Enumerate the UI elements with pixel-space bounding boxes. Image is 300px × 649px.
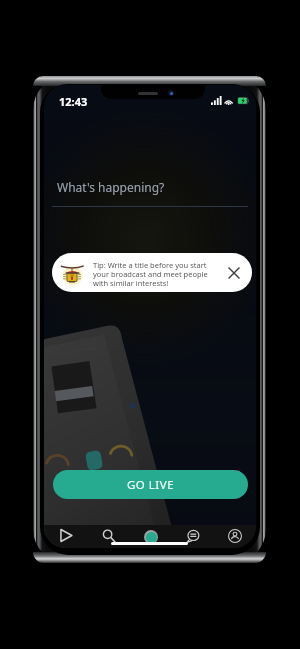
staticText: 12:43 <box>59 94 88 109</box>
button[interactable]: Go live <box>130 525 172 548</box>
staticText: GO LIVE <box>127 477 175 493</box>
staticText: Tip: Write a title before you start your… <box>93 260 209 289</box>
button[interactable]: Broadcasts <box>44 525 87 548</box>
button[interactable]: Profile <box>214 525 256 548</box>
button[interactable]: Tip: Write a title before you start your… <box>52 253 252 292</box>
staticText: What's happening? <box>57 179 165 195</box>
button[interactable]: Messages <box>172 525 214 548</box>
button[interactable]: Search <box>87 525 130 548</box>
button[interactable]: Dismiss tip <box>225 264 243 282</box>
button[interactable]: GO LIVE <box>53 470 248 499</box>
